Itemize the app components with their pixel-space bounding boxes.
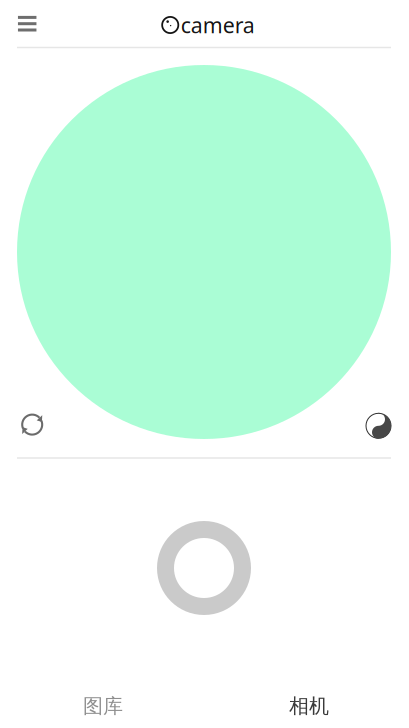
button[interactable]: Filters: [356, 404, 400, 448]
button[interactable]: 相机: [249, 684, 369, 728]
staticText: camera: [181, 11, 255, 39]
button[interactable]: Take photo: [154, 518, 254, 618]
staticText: 相机: [289, 694, 329, 718]
button[interactable]: Switch camera: [10, 403, 54, 447]
staticText: 图库: [83, 694, 123, 718]
button[interactable]: Menu: [5, 4, 49, 44]
button[interactable]: 图库: [43, 684, 163, 728]
